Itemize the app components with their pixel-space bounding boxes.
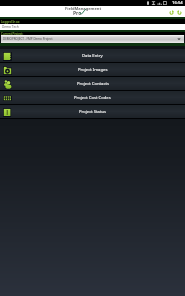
staticText: Project Cost Codes xyxy=(74,95,111,101)
staticText: DEMOPROJECT - FMP Demo Project xyxy=(3,37,53,41)
button[interactable]: DEMOPROJECT - FMP Demo Project xyxy=(1,35,184,43)
staticText: Current Project: xyxy=(1,32,24,35)
staticText: Data Entry xyxy=(82,53,103,59)
staticText: Demo Tech xyxy=(2,25,19,29)
staticText: FieldManagement xyxy=(65,6,102,11)
button[interactable]: Download data xyxy=(167,8,175,16)
button[interactable]: Project Images xyxy=(0,63,185,77)
button[interactable]: Project Contacts xyxy=(0,77,185,91)
button[interactable]: Project Status xyxy=(0,105,185,119)
button[interactable]: Upload data xyxy=(175,8,183,16)
staticText: Project Contacts xyxy=(77,81,109,87)
staticText: Logged In as: xyxy=(1,20,20,24)
staticText: Project Images xyxy=(78,67,108,73)
button[interactable]: Project Cost Codes xyxy=(0,91,185,105)
button[interactable]: Data Entry xyxy=(0,49,185,63)
staticText: 16:54 xyxy=(172,0,183,6)
staticText: Project Status xyxy=(79,109,107,115)
staticText: Pro xyxy=(73,10,82,17)
